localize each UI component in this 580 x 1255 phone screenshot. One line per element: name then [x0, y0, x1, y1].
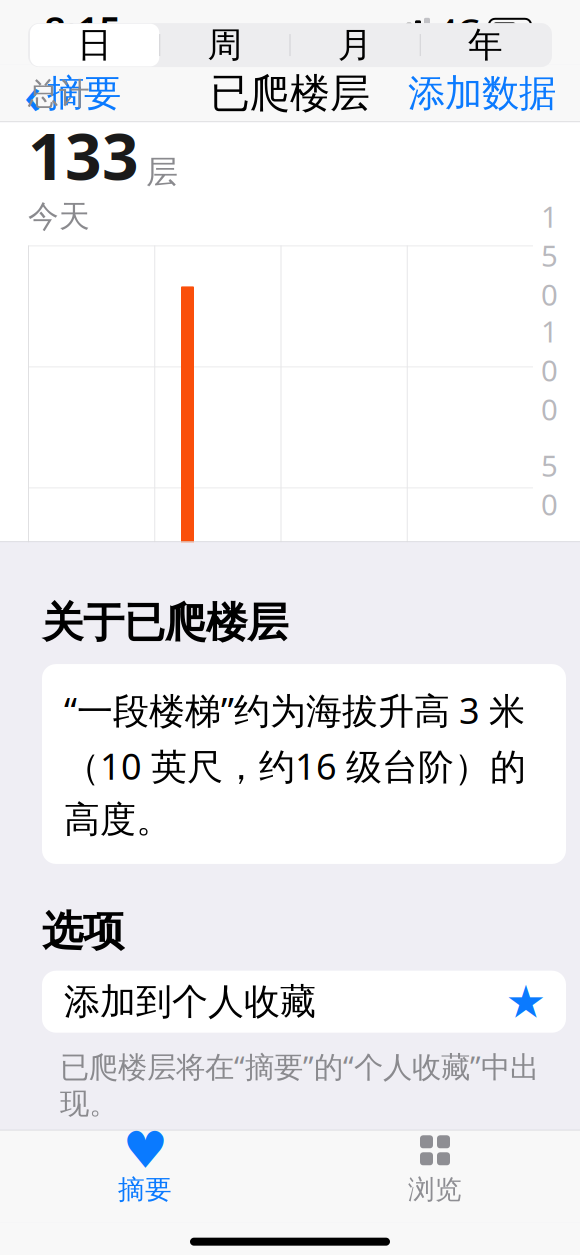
staticText: 周	[207, 24, 242, 66]
staticText: 摘要	[47, 70, 121, 116]
staticText: 日	[77, 24, 112, 66]
staticText: 总计	[28, 75, 90, 113]
staticText: 150	[541, 197, 558, 314]
staticText: 添加到个人收藏	[64, 980, 316, 1024]
staticText: 100	[541, 312, 558, 428]
staticText: 关于已爬楼层	[42, 597, 288, 648]
button[interactable]: ♥	[0, 1131, 290, 1209]
button[interactable]: 月	[290, 25, 420, 65]
staticText: 浏览	[408, 1173, 462, 1206]
staticText: 上午12时	[32, 617, 148, 655]
staticText: 月	[338, 24, 373, 66]
staticText: ★	[505, 976, 546, 1027]
staticText: 50	[541, 446, 558, 524]
button[interactable]: 周	[160, 25, 289, 65]
staticText: 4G	[438, 7, 481, 51]
staticText: 8:15	[44, 4, 121, 55]
staticText: 6时	[170, 617, 214, 655]
button[interactable]: 日	[30, 25, 159, 65]
staticText: 已爬楼层将在“摘要”的“个人收藏”中出现。	[60, 1047, 539, 1122]
button[interactable]: 年	[421, 25, 550, 65]
staticText: 年	[468, 24, 503, 66]
staticText: 层	[146, 152, 178, 192]
button[interactable]: 添加数据	[392, 64, 572, 122]
staticText: ‹	[24, 58, 41, 129]
staticText: 添加数据	[408, 70, 556, 116]
button[interactable]: ‹	[8, 64, 137, 122]
button[interactable]: 浏览	[290, 1131, 580, 1209]
staticText: ♥	[122, 1121, 167, 1179]
button[interactable]: 添加到个人收藏	[42, 971, 566, 1033]
staticText: 已爬楼层	[210, 69, 370, 118]
staticText: 摘要	[118, 1173, 172, 1206]
staticText: “一段楼梯”约为海拔升高 3 米（10 英尺，约16 级台阶）的高度。	[64, 686, 526, 842]
staticText: 选项	[42, 906, 124, 957]
staticText: 今天	[28, 198, 90, 235]
staticText: 133	[28, 113, 139, 198]
